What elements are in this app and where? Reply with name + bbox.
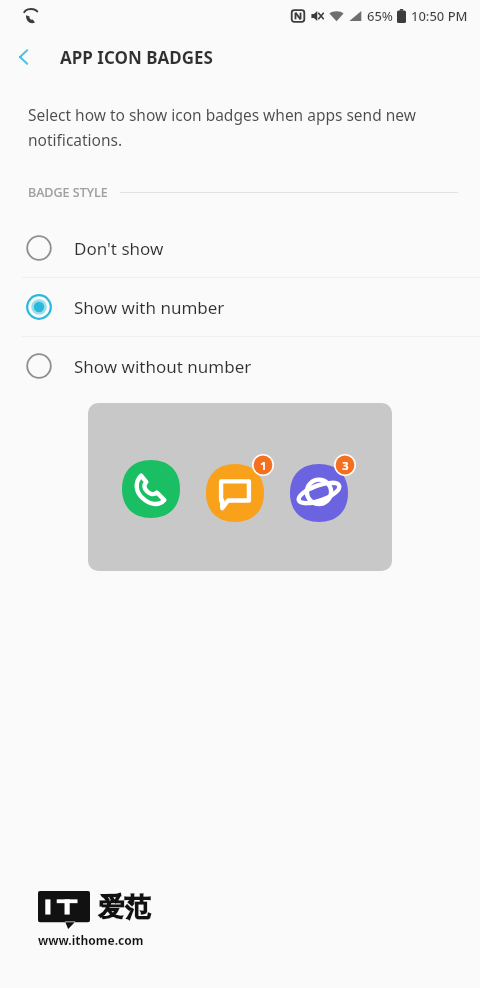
- staticText: 爱范: [98, 891, 150, 924]
- staticText: www.ithome.com: [38, 932, 144, 948]
- staticText: Show without number: [74, 355, 252, 378]
- staticText: 10:50 PM: [411, 7, 468, 25]
- staticText: Show with number: [74, 296, 225, 319]
- staticText: 65%: [367, 7, 393, 25]
- staticText: 3: [342, 458, 349, 473]
- staticText: APP ICON BADGES: [60, 46, 213, 69]
- button[interactable]: Show without number: [0, 337, 480, 395]
- button[interactable]: Don't show: [0, 219, 480, 277]
- button[interactable]: Show with number: [0, 278, 480, 336]
- staticText: Don't show: [74, 237, 164, 260]
- staticText: BADGE STYLE: [28, 184, 108, 201]
- button[interactable]: Back: [0, 33, 48, 81]
- staticText: Select how to show icon badges when apps…: [28, 104, 434, 150]
- staticText: 1: [260, 458, 267, 473]
